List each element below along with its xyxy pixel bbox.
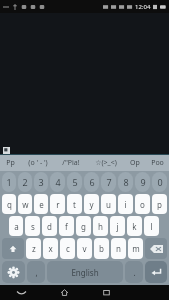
button[interactable]: 6 <box>84 172 99 192</box>
button[interactable]: Back <box>0 285 43 300</box>
staticText: p <box>157 199 162 210</box>
button[interactable]: Recents <box>85 285 127 300</box>
button[interactable]: q <box>2 194 16 214</box>
button[interactable]: Backspace <box>145 238 167 259</box>
button[interactable]: h <box>93 216 108 236</box>
button[interactable]: /"Pia! <box>55 155 87 171</box>
staticText: b <box>99 243 104 254</box>
staticText: n <box>116 243 121 254</box>
staticText: 2 <box>22 176 28 188</box>
button[interactable]: r <box>50 194 65 214</box>
button[interactable]: . <box>125 261 143 283</box>
staticText: 0 <box>157 176 163 188</box>
staticText: l <box>150 221 153 232</box>
staticText: m <box>132 243 140 254</box>
staticText: /"Pia! <box>62 158 80 168</box>
staticText: 3 <box>38 176 44 188</box>
staticText: t <box>73 199 76 210</box>
staticText: q <box>7 199 12 210</box>
staticText: g <box>81 221 86 232</box>
button[interactable]: (o ' - ') <box>20 155 55 171</box>
button[interactable]: y <box>84 194 99 214</box>
button[interactable]: 2 <box>18 172 32 192</box>
button[interactable]: l <box>144 216 159 236</box>
staticText: e <box>39 199 44 210</box>
button[interactable]: Poo <box>145 155 169 171</box>
button[interactable]: 8 <box>118 172 133 192</box>
button[interactable]: g <box>76 216 91 236</box>
button[interactable]: e <box>34 194 48 214</box>
staticText: 7 <box>106 176 112 188</box>
button[interactable]: 5 <box>67 172 82 192</box>
button[interactable]: 1 <box>2 172 16 192</box>
staticText: i <box>124 199 127 210</box>
button[interactable]: Pp <box>0 155 20 171</box>
button[interactable]: 4 <box>50 172 65 192</box>
staticText: 6 <box>89 176 95 188</box>
button[interactable]: 7 <box>101 172 116 192</box>
button[interactable]: o <box>135 194 150 214</box>
button[interactable]: i <box>118 194 133 214</box>
staticText: Op <box>130 158 140 168</box>
button[interactable]: b <box>94 238 109 259</box>
staticText: 12:04 <box>135 3 151 11</box>
staticText: 4 <box>55 176 61 188</box>
staticText: u <box>106 199 111 210</box>
button[interactable]: v <box>77 238 92 259</box>
button[interactable]: f <box>59 216 74 236</box>
button[interactable]: z <box>26 238 41 259</box>
button[interactable]: d <box>42 216 57 236</box>
button[interactable]: ☆(>_<) <box>87 155 124 171</box>
staticText: a <box>14 221 19 232</box>
staticText: Poo <box>151 158 164 168</box>
button[interactable]: , <box>27 261 45 283</box>
button[interactable]: 0 <box>152 172 167 192</box>
staticText: f <box>65 221 68 232</box>
staticText: j <box>116 221 119 232</box>
button[interactable]: m <box>128 238 143 259</box>
staticText: c <box>66 243 70 254</box>
staticText: k <box>132 221 137 232</box>
button[interactable]: 3 <box>34 172 48 192</box>
button[interactable]: p <box>152 194 167 214</box>
staticText: 9 <box>140 176 146 188</box>
staticText: y <box>89 199 94 210</box>
button[interactable]: 9 <box>135 172 150 192</box>
staticText: . <box>133 267 136 278</box>
staticText: (o ' - ') <box>28 158 48 168</box>
button[interactable]: Shift <box>2 238 24 259</box>
staticText: s <box>31 221 35 232</box>
staticText: d <box>47 221 52 232</box>
button[interactable]: Enter <box>145 261 167 283</box>
staticText: z <box>32 243 36 254</box>
button[interactable]: English <box>47 261 123 283</box>
button[interactable]: c <box>60 238 75 259</box>
button[interactable]: Settings <box>2 261 25 283</box>
staticText: w <box>22 199 29 210</box>
button[interactable]: s <box>25 216 40 236</box>
staticText: r <box>56 199 60 210</box>
staticText: h <box>98 221 103 232</box>
staticText: v <box>82 243 87 254</box>
button[interactable]: t <box>67 194 82 214</box>
button[interactable]: k <box>127 216 142 236</box>
button[interactable]: w <box>18 194 32 214</box>
button[interactable]: n <box>111 238 126 259</box>
staticText: , <box>35 267 38 278</box>
staticText: 5 <box>72 176 78 188</box>
button[interactable]: x <box>43 238 58 259</box>
staticText: Pp <box>6 158 15 168</box>
staticText: ☆(>_<) <box>95 158 117 168</box>
staticText: o <box>140 199 145 210</box>
staticText: English <box>71 267 99 278</box>
staticText: 1 <box>6 176 12 188</box>
staticText: 8 <box>123 176 129 188</box>
button[interactable]: j <box>110 216 125 236</box>
button[interactable]: a <box>9 216 23 236</box>
button[interactable]: Home <box>43 285 85 300</box>
button[interactable]: u <box>101 194 116 214</box>
staticText: x <box>48 243 53 254</box>
button[interactable]: Op <box>124 155 145 171</box>
